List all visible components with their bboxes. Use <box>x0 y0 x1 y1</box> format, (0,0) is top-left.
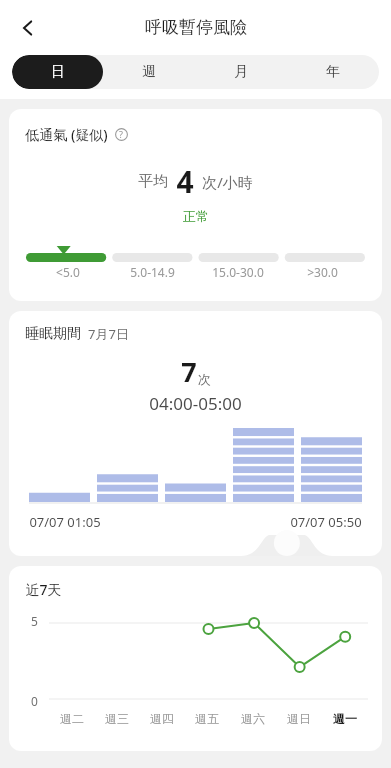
staticText: 呼吸暫停風險 <box>145 17 247 38</box>
staticText: 5 <box>31 613 38 629</box>
staticText: <5.0 <box>56 264 80 280</box>
staticText: 平均 <box>138 172 168 191</box>
staticText: ? <box>119 128 123 140</box>
staticText: 週一 <box>333 711 357 726</box>
staticText: 15.0-30.0 <box>212 264 264 280</box>
staticText: 近7天 <box>25 580 62 599</box>
staticText: 正常 <box>183 208 209 224</box>
button[interactable]: 月 <box>195 55 287 89</box>
staticText: 週日 <box>287 711 311 726</box>
staticText: 7月7日 <box>88 325 129 343</box>
staticText: 週四 <box>150 711 174 726</box>
staticText: 睡眠期間 <box>25 325 81 343</box>
staticText: 5.0-14.9 <box>130 264 175 280</box>
staticText: 7 <box>181 353 197 390</box>
staticText: 週五 <box>195 711 219 726</box>
staticText: 低通氣 (疑似) <box>25 125 108 144</box>
staticText: 週 <box>142 63 156 81</box>
staticText: 週六 <box>241 711 265 726</box>
staticText: 4 <box>176 161 194 202</box>
button[interactable]: 日 <box>12 55 103 89</box>
button[interactable]: 週 <box>103 55 195 89</box>
staticText: 週三 <box>105 711 129 726</box>
staticText: 07/07 05:50 <box>290 513 362 531</box>
staticText: 月 <box>234 63 248 81</box>
staticText: 07/07 01:05 <box>29 513 101 531</box>
button[interactable]: Info <box>110 123 132 145</box>
staticText: >30.0 <box>307 264 338 280</box>
staticText: 次/小時 <box>202 172 253 192</box>
staticText: 週二 <box>60 711 84 726</box>
staticText: 年 <box>326 63 340 81</box>
staticText: 04:00-05:00 <box>149 392 242 415</box>
button[interactable]: 年 <box>287 55 379 89</box>
button[interactable]: Back <box>6 6 50 50</box>
staticText: 日 <box>51 63 65 81</box>
staticText: 次 <box>198 371 211 387</box>
staticText: 0 <box>31 693 38 709</box>
